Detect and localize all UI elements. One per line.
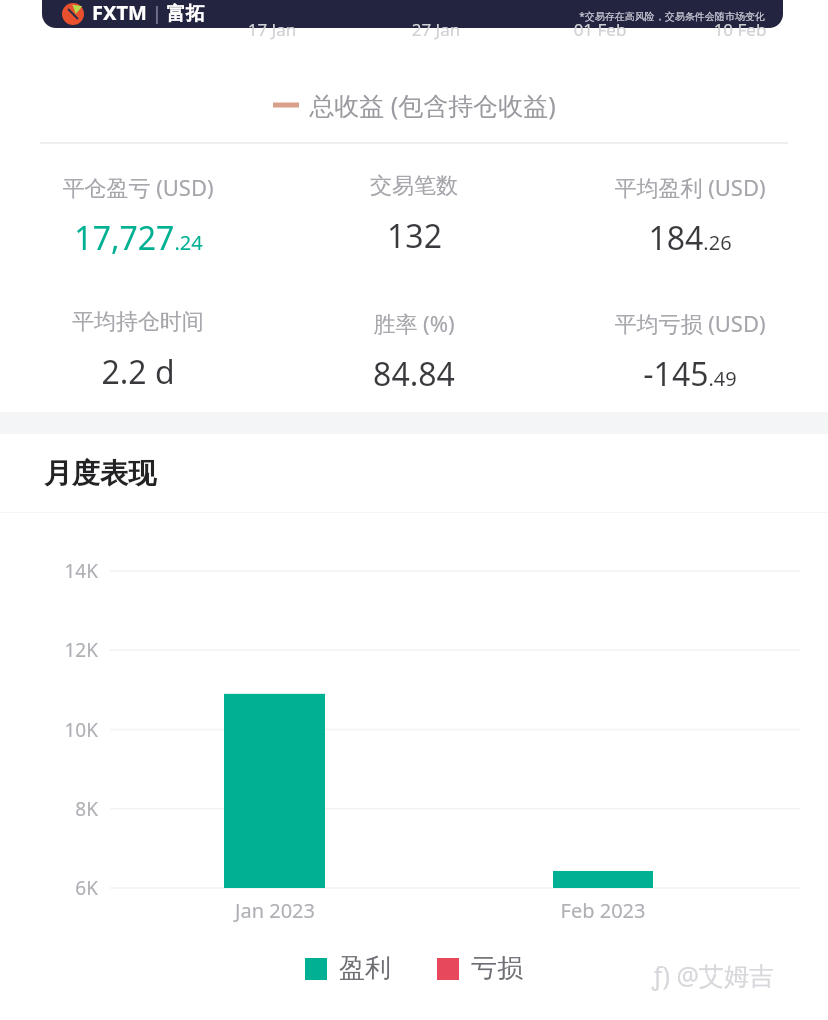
staticText: 10K	[40, 717, 98, 743]
staticText: 14K	[40, 558, 98, 584]
staticText: 平均持仓时间	[72, 308, 204, 336]
staticText: 6K	[40, 875, 98, 901]
staticText: Feb 2023	[518, 897, 688, 924]
staticText: 84.84	[373, 352, 455, 396]
staticText: 17 Jan	[222, 18, 322, 41]
button[interactable]: 盈利	[305, 952, 391, 985]
staticText: 总收益 (包含持仓收益)	[309, 88, 556, 122]
button[interactable]: 月度表现	[44, 456, 156, 491]
staticText: 17,727.24	[74, 216, 203, 260]
staticText: 平均亏损 (USD)	[614, 308, 766, 338]
button[interactable]: 平均持仓时间	[0, 308, 276, 394]
staticText: 01 Feb	[550, 18, 650, 41]
staticText: Jan 2023	[190, 897, 360, 924]
button[interactable]: 亏损	[437, 952, 523, 985]
staticText: 10 Feb	[690, 18, 790, 41]
staticText: 12K	[40, 637, 98, 663]
staticText: 月度表现	[44, 456, 156, 491]
button[interactable]: 平均亏损 (USD)	[552, 308, 828, 396]
staticText: 交易笔数	[370, 172, 458, 200]
button[interactable]: 总收益 (包含持仓收益)	[0, 88, 828, 122]
button[interactable]: 平均盈利 (USD)	[552, 172, 828, 260]
other: FXTM logo	[62, 3, 84, 25]
staticText: -145.49	[643, 352, 737, 396]
staticText: 132	[387, 214, 442, 258]
button[interactable]: 交易笔数	[276, 172, 552, 258]
staticText: FXTM | 富拓	[92, 0, 205, 26]
staticText: ƒ) @艾姆吉	[652, 958, 774, 992]
staticText: 184.26	[648, 216, 732, 260]
staticText: 亏损	[471, 952, 523, 985]
staticText: 胜率 (%)	[373, 308, 455, 338]
staticText: 2.2 d	[101, 350, 175, 394]
staticText: 8K	[40, 796, 98, 822]
button[interactable]: FXTM logo	[42, 0, 783, 28]
staticText: 盈利	[339, 952, 391, 985]
button[interactable]: 胜率 (%)	[276, 308, 552, 396]
button[interactable]: 平仓盈亏 (USD)	[0, 172, 276, 260]
staticText: 平仓盈亏 (USD)	[62, 172, 214, 202]
staticText: 27 Jan	[386, 18, 486, 41]
staticText: *交易存在高风险，交易条件会随市场变化	[579, 9, 765, 23]
staticText: 平均盈利 (USD)	[614, 172, 766, 202]
